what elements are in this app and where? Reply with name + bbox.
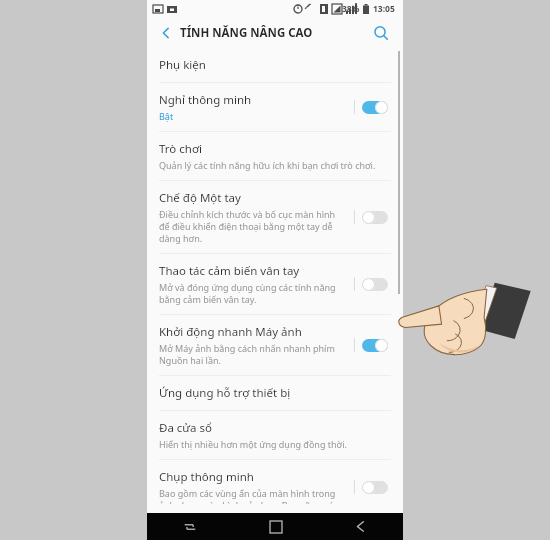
- staticText: Bao gồm các vùng ẩn của màn hình trong ả…: [159, 487, 343, 504]
- button[interactable]: Toggle off: [349, 474, 393, 500]
- button[interactable]: Chế độ Một tay: [147, 181, 403, 253]
- button[interactable]: Thao tác cảm biến vân tay: [147, 254, 403, 314]
- staticText: Mở và đóng ứng dụng cùng các tính năng b…: [159, 281, 343, 305]
- staticText: Phụ kiện: [159, 57, 206, 73]
- button[interactable]: Ứng dụng hỗ trợ thiết bị: [147, 376, 403, 410]
- staticText: 13:05: [373, 3, 395, 15]
- button[interactable]: Khởi động nhanh Máy ảnh: [147, 315, 403, 375]
- button[interactable]: Back: [318, 513, 403, 540]
- button[interactable]: Toggle on: [349, 332, 393, 358]
- staticText: Khởi động nhanh Máy ảnh: [159, 324, 302, 340]
- staticText: Bật: [159, 110, 174, 122]
- staticText: Trò chơi: [159, 141, 202, 157]
- staticText: TÍNH NĂNG NÂNG CAO: [180, 25, 313, 41]
- button[interactable]: Phụ kiện: [147, 48, 403, 82]
- button[interactable]: Recents: [147, 513, 233, 540]
- button[interactable]: Toggle on: [349, 94, 393, 120]
- button[interactable]: Toggle off: [349, 271, 393, 297]
- button[interactable]: Đa cửa sổ: [147, 411, 403, 459]
- button[interactable]: Chụp thông minh: [147, 460, 403, 513]
- staticText: Chụp thông minh: [159, 469, 254, 485]
- staticText: Quản lý các tính năng hữu ích khi bạn ch…: [159, 159, 376, 171]
- button[interactable]: Home: [233, 513, 318, 540]
- staticText: Ứng dụng hỗ trợ thiết bị: [159, 385, 291, 401]
- button[interactable]: Trò chơi: [147, 132, 403, 180]
- staticText: Nghỉ thông minh: [159, 92, 252, 108]
- staticText: Thao tác cảm biến vân tay: [159, 263, 300, 279]
- button[interactable]: Search: [367, 19, 395, 47]
- button[interactable]: Nghỉ thông minh: [147, 83, 403, 131]
- staticText: Đa cửa sổ: [159, 420, 213, 436]
- staticText: Mở Máy ảnh bằng cách nhấn nhanh phím Ngu…: [159, 342, 343, 366]
- staticText: 38%: [342, 3, 360, 15]
- button[interactable]: Toggle off: [349, 204, 393, 230]
- staticText: Điều chỉnh kích thước và bố cục màn hình…: [159, 208, 343, 244]
- button[interactable]: Back: [153, 20, 179, 46]
- staticText: Hiển thị nhiều hơn một ứng dụng đồng thờ…: [159, 438, 347, 450]
- staticText: Chế độ Một tay: [159, 190, 241, 206]
